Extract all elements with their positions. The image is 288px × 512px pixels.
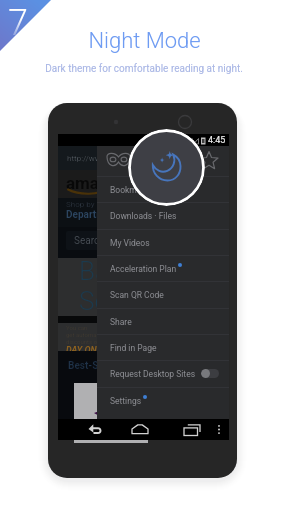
staticText: http://www.amazon.com [67, 154, 155, 163]
button[interactable]: Night Mode [128, 129, 205, 206]
staticText: Dark theme for comfortable reading at ni… [45, 63, 243, 75]
staticText: discounts on [66, 338, 101, 345]
staticText: Sc [79, 286, 108, 314]
staticText: 4:45 [208, 135, 226, 146]
staticText: Bookmarks [110, 185, 153, 195]
staticText: Scan QR Code [110, 290, 164, 300]
staticText: Search [74, 235, 105, 247]
staticText: 7 [8, 2, 28, 40]
staticText: Settings [110, 396, 142, 406]
staticText: amazon [66, 173, 127, 193]
button[interactable]: Share [97, 309, 229, 334]
staticText: You can [66, 324, 88, 331]
staticText: Share [110, 317, 132, 327]
button[interactable]: Scan QR Code [97, 282, 229, 307]
button[interactable]: Request Desktop Sites [97, 361, 229, 386]
staticText: get automatic [66, 331, 103, 338]
staticText: Request Desktop Sites [110, 369, 196, 379]
button[interactable]: Bookmarks [97, 177, 229, 202]
staticText: Shop by [66, 200, 95, 209]
staticText: My Videos [110, 238, 150, 248]
staticText: Best-Selling [68, 360, 124, 372]
staticText: Ba [79, 256, 109, 286]
button[interactable]: Acceleration Plan [97, 256, 229, 281]
other: Step 7 [8, 2, 32, 40]
staticText: Night Mode [88, 28, 201, 54]
staticText: Acceleration Plan [110, 264, 177, 274]
staticText: Downloads · Files [110, 211, 177, 221]
staticText: DAY ONE [66, 345, 102, 352]
staticText: Departments [66, 209, 125, 221]
button[interactable]: Find in Page [97, 335, 229, 360]
staticText: Find in Page [110, 343, 157, 353]
button[interactable]: My Videos [97, 230, 229, 255]
button[interactable]: Settings [97, 388, 229, 413]
button[interactable]: Downloads · Files [97, 203, 229, 228]
